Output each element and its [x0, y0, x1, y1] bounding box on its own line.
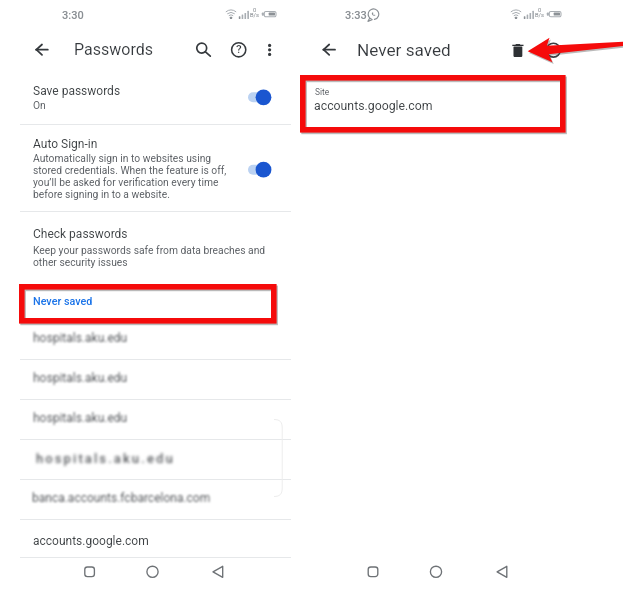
staticText: 0 [253, 7, 257, 14]
button[interactable]: Help and feedback [228, 38, 250, 60]
button[interactable]: Auto sign-in toggle [244, 160, 276, 180]
staticText: Check passwords [33, 227, 128, 241]
button[interactable]: More options [260, 38, 280, 60]
button[interactable]: Home [422, 558, 450, 586]
staticText: hospitals.aku.edu [33, 371, 128, 385]
button[interactable]: Home [139, 558, 167, 586]
button[interactable]: Search [191, 38, 213, 60]
button[interactable]: hospitals.aku.edu [0, 440, 311, 479]
staticText: accounts.google.com [314, 99, 433, 113]
button[interactable]: Back [205, 558, 233, 586]
staticText: 0 [538, 7, 542, 14]
button[interactable]: hospitals.aku.edu [0, 400, 311, 439]
button[interactable]: Navigate up [26, 38, 48, 60]
staticText: B/s [535, 12, 544, 19]
button[interactable]: Auto Sign-in [0, 125, 311, 211]
staticText: On [33, 99, 46, 111]
staticText: 3:30 [62, 9, 84, 22]
button[interactable]: Check passwords [0, 212, 311, 284]
button[interactable]: Back [489, 558, 517, 586]
staticText: Keep your passwords safe from data breac… [33, 244, 266, 268]
button[interactable]: Recent apps [76, 558, 104, 586]
button[interactable]: Recent apps [359, 558, 387, 586]
staticText: Automatically sign in to websites using … [33, 152, 227, 200]
staticText: Never saved [357, 40, 451, 60]
button[interactable]: hospitals.aku.edu [0, 360, 311, 399]
staticText: banca.accounts.fcbarcelona.com [32, 491, 211, 505]
button[interactable]: Save passwords, On [0, 76, 311, 124]
staticText: 3:33 [345, 9, 367, 22]
button[interactable]: accounts.google.com [0, 520, 311, 557]
button[interactable]: Never saved [0, 286, 311, 323]
staticText: ? [236, 42, 242, 56]
button[interactable]: Back [313, 38, 335, 60]
button[interactable]: Delete [508, 38, 530, 60]
staticText: Never saved [33, 295, 93, 308]
staticText: accounts.google.com [33, 534, 149, 548]
staticText: Site [315, 87, 330, 97]
button[interactable]: Save passwords toggle [244, 88, 276, 108]
staticText: Save passwords [33, 84, 121, 98]
staticText: B/s [250, 12, 259, 19]
staticText: Passwords [74, 40, 153, 59]
staticText: hospitals.aku.edu [33, 411, 128, 425]
staticText: Auto Sign-in [33, 137, 98, 151]
staticText: hospitals.aku.edu [36, 451, 175, 466]
button[interactable]: banca.accounts.fcbarcelona.com [0, 480, 311, 519]
button[interactable]: Site accounts.google.com [304, 79, 562, 129]
button[interactable]: hospitals.aku.edu [0, 324, 311, 359]
staticText: hospitals.aku.edu [33, 331, 128, 345]
